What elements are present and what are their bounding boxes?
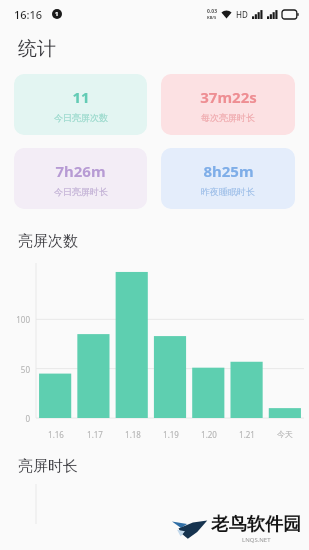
other: 老鸟软件园 watermark	[172, 513, 301, 544]
staticText: 今日亮屏时长	[54, 186, 108, 197]
staticText: 今天	[277, 429, 293, 439]
staticText: 亮屏次数	[18, 232, 78, 251]
staticText: 老鸟软件园	[211, 513, 301, 536]
staticText: 昨夜睡眠时长	[201, 186, 255, 197]
staticText: 0.03	[207, 8, 217, 15]
button[interactable]: 8h25m	[161, 148, 295, 209]
staticText: 100	[2, 314, 30, 325]
staticText: 统计	[18, 37, 56, 61]
staticText: 1.19	[163, 429, 179, 440]
staticText: 1.16	[48, 429, 64, 440]
staticText: 1.21	[239, 429, 255, 440]
staticText: KB/S	[207, 15, 217, 20]
staticText: 1.17	[87, 429, 103, 440]
staticText: 1.20	[201, 429, 217, 440]
button[interactable]: 7h26m	[14, 148, 147, 209]
staticText: 8h25m	[203, 161, 254, 181]
staticText: 0	[2, 413, 30, 424]
staticText: 亮屏时长	[18, 457, 78, 476]
staticText: LNQS.NET	[242, 536, 271, 544]
staticText: 今日亮屏次数	[54, 112, 108, 123]
button[interactable]: 37m22s	[161, 74, 295, 135]
button[interactable]: 11	[14, 74, 147, 135]
staticText: 1	[55, 10, 59, 18]
staticText: 16:16	[14, 7, 43, 22]
staticText: HD	[236, 9, 248, 20]
staticText: 37m22s	[200, 87, 257, 107]
staticText: 1.18	[125, 429, 141, 440]
staticText: 7h26m	[55, 161, 106, 181]
staticText: 50	[2, 364, 30, 375]
staticText: 11	[72, 87, 90, 107]
staticText: 每次亮屏时长	[201, 112, 255, 123]
